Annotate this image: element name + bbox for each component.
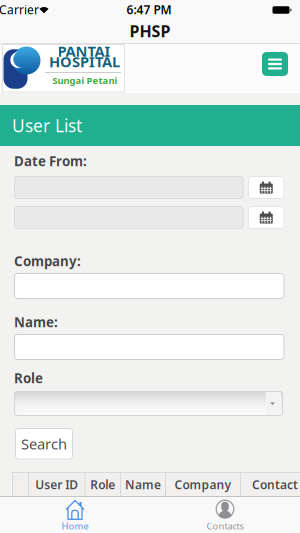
staticText: Role — [90, 476, 115, 492]
staticText: Role — [14, 369, 43, 387]
staticText: User List — [12, 114, 82, 137]
button[interactable]: Home — [0, 496, 150, 533]
staticText: Date From: — [14, 152, 87, 170]
staticText: Home — [61, 520, 88, 532]
staticText: Search — [21, 434, 67, 453]
staticText: Name: — [14, 313, 58, 331]
staticText: 6:47 PM — [126, 1, 171, 17]
staticText: PANTAI — [57, 41, 110, 61]
button[interactable]: Contacts — [150, 496, 300, 533]
staticText: HOSPITAL — [49, 52, 120, 71]
staticText: Contact — [252, 476, 298, 492]
staticText: Contacts — [206, 520, 243, 532]
button[interactable]: Menu — [262, 52, 288, 76]
staticText: User ID — [35, 476, 78, 492]
button[interactable]: Choose date — [248, 176, 284, 199]
button[interactable]: Select role — [14, 391, 283, 416]
button[interactable]: Choose date — [248, 206, 284, 229]
staticText: Company — [174, 476, 231, 492]
staticText: PHSP — [129, 20, 170, 42]
staticText: Name — [125, 476, 161, 492]
staticText: Sungai Petani — [52, 74, 117, 87]
staticText: Company: — [14, 252, 81, 270]
staticText: Carrier — [0, 1, 39, 17]
button[interactable]: Search — [15, 428, 73, 459]
